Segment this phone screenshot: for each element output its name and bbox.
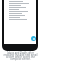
button[interactable]	[4, 12, 36, 14]
button[interactable]	[4, 14, 36, 16]
button[interactable]	[4, 4, 36, 6]
button[interactable]	[4, 0, 36, 2]
button[interactable]	[4, 8, 36, 10]
button[interactable]: Compose	[31, 36, 36, 41]
staticText: Inbox and Drafts after enabling the Add …	[2, 51, 39, 60]
button[interactable]	[4, 16, 36, 18]
button[interactable]	[4, 10, 36, 12]
button[interactable]	[4, 18, 36, 20]
button[interactable]	[4, 6, 36, 8]
button[interactable]	[4, 2, 36, 4]
